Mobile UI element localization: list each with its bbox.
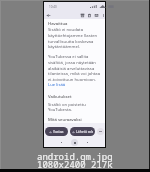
- button[interactable]: Vastaa: [45, 127, 68, 136]
- staticText: Sisältö ei noudata: [48, 27, 83, 33]
- staticText: käyttöehtojamme (lasten: [48, 33, 98, 39]
- staticText: Mitä seuraavaksi: [48, 117, 82, 123]
- button[interactable]: More actions: [97, 128, 104, 135]
- staticText: turvallisuutta koskevaa: [48, 39, 94, 45]
- button[interactable]: Lue lisää: [48, 82, 66, 88]
- staticText: Sisältö on poistettu: [48, 102, 86, 108]
- button[interactable]: Mark unread: [93, 12, 100, 19]
- button[interactable]: Lähetä edel...: [70, 127, 95, 136]
- staticText: YouTubesta.: [48, 107, 72, 113]
- staticText: Lähetä edel...: [76, 129, 93, 134]
- staticText: sisältöä, jossa näytetään: [48, 60, 96, 66]
- button[interactable]: Back: [45, 12, 52, 19]
- staticText: 1080x2400 217k: [37, 158, 113, 170]
- staticText: YouTubessa ei sallita: [48, 54, 89, 60]
- staticText: ei-toivottuun huomioon.: [48, 77, 96, 83]
- staticText: tilanteissa, mikä voi johtaa: [48, 71, 101, 77]
- staticText: Vaikutukset: [48, 94, 72, 100]
- staticText: 10:40: [49, 5, 57, 9]
- staticText: Havaittua: [48, 21, 68, 27]
- staticText: alaikäisiä arveluttavissa: [48, 66, 95, 72]
- button[interactable]: More options: [100, 12, 107, 19]
- staticText: android.gm.jpg: [37, 150, 113, 162]
- button[interactable]: Delete: [86, 12, 93, 19]
- staticText: Vastaa: [53, 129, 64, 134]
- staticText: käytäntöämme).: [48, 44, 81, 50]
- button[interactable]: Archive: [79, 12, 86, 19]
